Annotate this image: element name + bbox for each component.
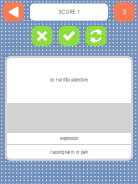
staticText: Expression (60, 136, 78, 141)
staticText: SCORE: 1 (58, 9, 79, 15)
staticText: (n): Harmful (adjective) (50, 78, 88, 82)
button[interactable]: Correct (58, 26, 79, 46)
button[interactable]: Wrong (31, 26, 52, 46)
button[interactable]: Causing harm or pain (6, 145, 132, 160)
button[interactable]: Expression (6, 133, 132, 144)
button[interactable]: Lives remaining: 3 (114, 2, 135, 22)
staticText: Causing harm or pain (50, 150, 88, 155)
staticText: 3 (122, 8, 126, 16)
button[interactable]: Repeat (85, 26, 106, 46)
button[interactable]: Back (3, 2, 24, 22)
